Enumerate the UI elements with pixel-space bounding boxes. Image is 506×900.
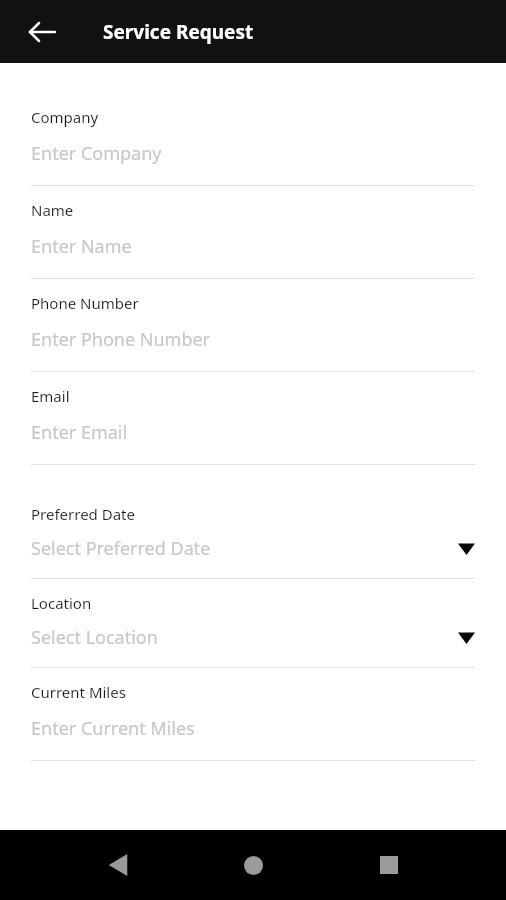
staticText: Enter Current Miles xyxy=(31,716,195,741)
staticText: Location xyxy=(31,593,92,613)
staticText: Service Request xyxy=(103,19,254,45)
staticText: Preferred Date xyxy=(31,504,135,524)
button[interactable]: Recent apps xyxy=(361,837,417,893)
staticText: Enter Company xyxy=(31,141,162,166)
button[interactable]: Phone Number xyxy=(31,279,475,372)
button[interactable]: Preferred Date xyxy=(31,490,475,579)
button[interactable]: Back xyxy=(90,837,146,893)
button[interactable]: Company xyxy=(31,93,475,186)
button[interactable]: Home xyxy=(225,837,281,893)
staticText: Select Location xyxy=(31,625,158,650)
button[interactable]: Email xyxy=(31,372,475,465)
staticText: Phone Number xyxy=(31,293,139,313)
staticText: Select Preferred Date xyxy=(31,536,211,561)
staticText: Enter Name xyxy=(31,234,132,259)
staticText: Enter Phone Number xyxy=(31,327,211,352)
staticText: Name xyxy=(31,200,74,220)
button[interactable]: Name xyxy=(31,186,475,279)
button[interactable]: Back xyxy=(26,16,58,48)
staticText: Current Miles xyxy=(31,682,126,702)
button[interactable]: Location xyxy=(31,579,475,668)
staticText: Company xyxy=(31,107,99,127)
staticText: Enter Email xyxy=(31,420,128,445)
staticText: Email xyxy=(31,386,70,406)
button[interactable]: Current Miles xyxy=(31,668,475,761)
